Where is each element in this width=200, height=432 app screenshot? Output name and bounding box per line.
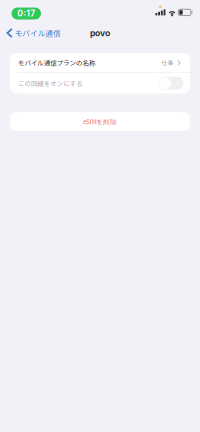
- staticText: eSIMを削除: [83, 117, 117, 126]
- staticText: モバイル通信: [15, 27, 61, 38]
- staticText: povo: [90, 28, 110, 38]
- staticText: 0:17: [17, 8, 35, 19]
- staticText: 仕事: [161, 58, 173, 67]
- button[interactable]: eSIMを削除: [10, 112, 190, 131]
- staticText: この回線をオンにする: [18, 78, 83, 88]
- button[interactable]: この回線をオンにする: [10, 73, 190, 93]
- button[interactable]: モバイル通信: [0, 24, 66, 42]
- button[interactable]: モバイル通信プランの名称: [10, 53, 190, 72]
- staticText: モバイル通信プランの名称: [18, 58, 96, 67]
